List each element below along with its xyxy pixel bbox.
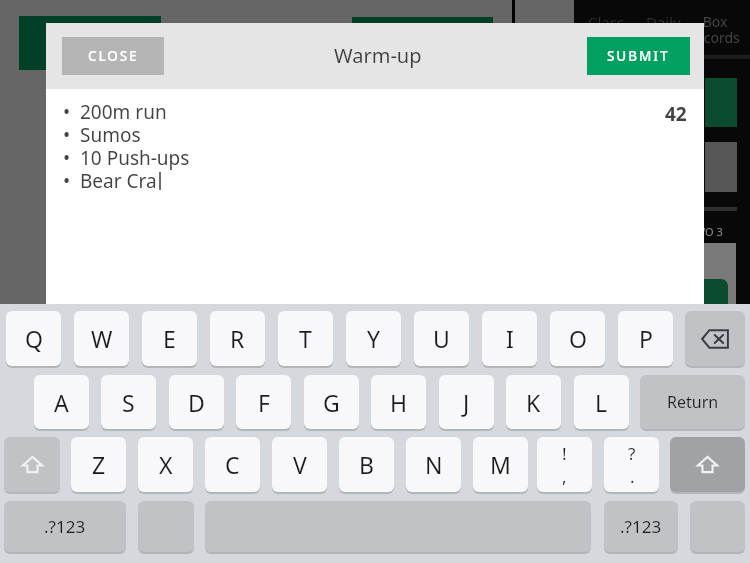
staticText: G (323, 387, 340, 418)
button[interactable]: .?123 (604, 501, 678, 552)
staticText: E (163, 323, 176, 354)
button[interactable]: R (210, 311, 265, 366)
staticText: 42 (665, 101, 687, 127)
staticText: Box records (690, 12, 740, 47)
button[interactable]: O (550, 311, 605, 366)
staticText: B (359, 449, 374, 480)
staticText: T (299, 323, 312, 354)
staticText: I (506, 323, 514, 354)
staticText: V (293, 449, 307, 480)
staticText: U (433, 323, 450, 354)
button[interactable]: Q (6, 311, 61, 366)
staticText: L (595, 387, 608, 418)
button[interactable]: Class (588, 12, 625, 32)
staticText: Y (367, 323, 381, 354)
button[interactable]: N (406, 437, 461, 492)
staticText: CLOSE (88, 47, 139, 65)
button[interactable]: ? (604, 437, 659, 492)
staticText: SUBMIT (607, 47, 670, 65)
staticText: N (425, 449, 443, 480)
staticText: .?123 (44, 515, 86, 538)
staticText: .?123 (620, 515, 662, 538)
staticText: A (54, 387, 69, 418)
staticText: W (91, 323, 113, 354)
button[interactable]: .?123 (4, 501, 126, 552)
button[interactable]: V (272, 437, 327, 492)
staticText: ! (562, 442, 567, 465)
staticText: Q (25, 323, 43, 354)
button[interactable]: G (304, 375, 359, 429)
button[interactable]: B (339, 437, 394, 492)
button[interactable]: K (506, 375, 561, 429)
button[interactable]: U (414, 311, 469, 366)
button[interactable]: Daily (646, 12, 681, 32)
button[interactable]: C (205, 437, 260, 492)
button[interactable]: S (101, 375, 156, 429)
staticText: J (463, 387, 470, 418)
staticText: O (569, 323, 587, 354)
button[interactable]: W (74, 311, 129, 366)
staticText: K (526, 387, 541, 418)
staticText: C (225, 449, 240, 480)
button[interactable]: H (371, 375, 426, 429)
staticText: ? (628, 442, 636, 465)
staticText: • • • • (63, 99, 71, 194)
button[interactable]: Z (71, 437, 126, 492)
button[interactable]: J (439, 375, 494, 429)
staticText: P (639, 323, 653, 354)
button[interactable]: X (138, 437, 193, 492)
button[interactable]: L (574, 375, 629, 429)
staticText: WO 3 (695, 224, 723, 239)
button[interactable]: Return (640, 375, 745, 429)
staticText: F (258, 387, 270, 418)
staticText: 200m run Sumos 10 Push-ups Bear Cra (80, 99, 190, 194)
button[interactable]: I (482, 311, 537, 366)
button[interactable]: ! (537, 437, 592, 492)
button[interactable]: SUBMIT (587, 37, 690, 75)
button[interactable]: Shift (4, 437, 60, 492)
button[interactable]: Y (346, 311, 401, 366)
button[interactable]: T (278, 311, 333, 366)
staticText: X (159, 449, 173, 480)
staticText: R (230, 323, 245, 354)
button[interactable]: CLOSE (62, 37, 164, 75)
staticText: . (630, 465, 635, 488)
button[interactable]: D (169, 375, 224, 429)
staticText: Warm-up (334, 42, 422, 69)
button[interactable]: A (34, 375, 89, 429)
button[interactable]: E (142, 311, 197, 366)
button[interactable]: P (618, 311, 673, 366)
staticText: S (122, 387, 135, 418)
button[interactable]: M (473, 437, 528, 492)
staticText: Z (92, 449, 106, 480)
button[interactable]: Box records (685, 12, 745, 47)
staticText: Return (667, 391, 719, 413)
button[interactable]: Backspace (685, 311, 745, 366)
staticText: H (390, 387, 408, 418)
staticText: , (562, 465, 567, 488)
staticText: M (490, 449, 511, 480)
staticText: D (188, 387, 205, 418)
button[interactable]: F (236, 375, 291, 429)
button[interactable]: Shift (670, 437, 745, 492)
